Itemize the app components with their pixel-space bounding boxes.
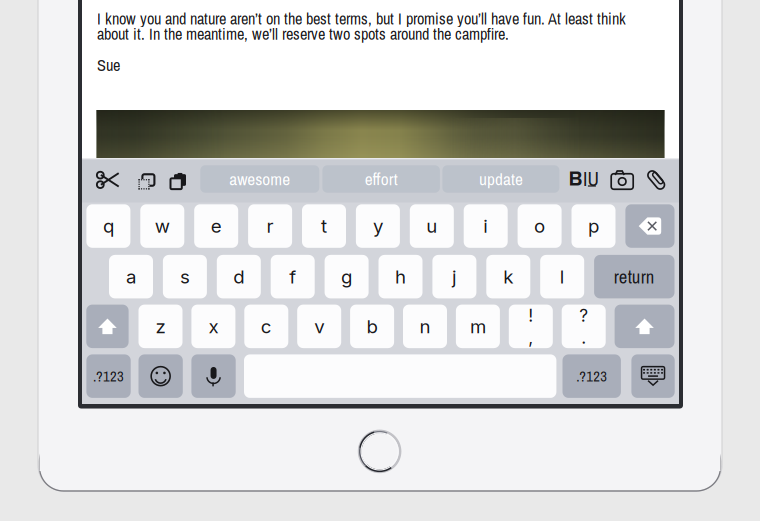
button[interactable]: j bbox=[432, 255, 476, 298]
button[interactable]: m bbox=[456, 305, 500, 348]
staticText: I bbox=[583, 166, 587, 192]
staticText: awesome bbox=[229, 167, 290, 191]
button[interactable]: x bbox=[191, 305, 235, 348]
staticText: y bbox=[373, 215, 383, 237]
staticText: s bbox=[180, 265, 190, 288]
staticText: p bbox=[588, 215, 599, 237]
staticText: t bbox=[321, 215, 327, 237]
staticText: about it. In the meantime, we’ll reserve… bbox=[97, 23, 509, 45]
staticText: i bbox=[483, 215, 488, 237]
button[interactable]: c bbox=[244, 305, 288, 348]
button[interactable]: Dictate bbox=[191, 354, 236, 398]
staticText: f bbox=[289, 265, 296, 288]
button[interactable]: p bbox=[571, 204, 615, 248]
staticText: n bbox=[419, 315, 430, 338]
staticText: ? bbox=[579, 305, 588, 326]
button[interactable]: Cut bbox=[92, 165, 124, 195]
staticText: a bbox=[126, 265, 136, 288]
button[interactable]: h bbox=[378, 255, 422, 298]
staticText: j bbox=[452, 265, 457, 288]
staticText: l bbox=[560, 265, 565, 288]
button[interactable]: o bbox=[518, 204, 562, 248]
staticText: e bbox=[211, 215, 222, 237]
button[interactable]: Shift bbox=[615, 305, 674, 348]
staticText: . bbox=[581, 327, 586, 348]
staticText: return bbox=[614, 264, 655, 289]
staticText: I know you and nature aren’t on the best… bbox=[97, 7, 626, 29]
button[interactable]: Paste bbox=[161, 165, 191, 195]
button[interactable]: Insert Photo bbox=[607, 166, 637, 194]
button[interactable]: Copy bbox=[129, 165, 159, 195]
button[interactable]: update bbox=[442, 165, 559, 193]
button[interactable]: Delete bbox=[625, 204, 674, 248]
button[interactable]: w bbox=[140, 204, 184, 248]
staticText: u bbox=[426, 215, 437, 237]
button[interactable]: r bbox=[248, 204, 292, 248]
button[interactable]: ! bbox=[509, 305, 553, 348]
button[interactable]: t bbox=[302, 204, 346, 248]
staticText: g bbox=[341, 265, 352, 288]
button[interactable]: d bbox=[217, 255, 261, 298]
staticText: B bbox=[568, 168, 582, 189]
staticText: m bbox=[470, 315, 486, 338]
button[interactable]: b bbox=[350, 305, 394, 348]
button[interactable]: a bbox=[109, 255, 153, 298]
staticText: x bbox=[208, 315, 218, 338]
staticText: r bbox=[267, 215, 274, 237]
button[interactable]: return bbox=[594, 255, 674, 298]
button[interactable]: .?123 bbox=[86, 354, 131, 398]
button[interactable]: k bbox=[486, 255, 530, 298]
staticText: , bbox=[528, 327, 533, 348]
button[interactable]: Hide Keyboard bbox=[631, 354, 675, 398]
button[interactable]: ? bbox=[562, 305, 606, 348]
staticText: c bbox=[261, 315, 272, 338]
staticText: w bbox=[155, 215, 170, 237]
button[interactable]: Space bbox=[244, 354, 556, 398]
button[interactable]: f bbox=[271, 255, 315, 298]
button[interactable]: q bbox=[86, 204, 130, 248]
button[interactable]: Bold Italic Underline bbox=[569, 165, 597, 193]
button[interactable]: Shift bbox=[86, 305, 129, 348]
staticText: ! bbox=[528, 305, 533, 326]
staticText: k bbox=[503, 265, 513, 288]
staticText: h bbox=[395, 265, 406, 288]
button[interactable]: Emoji bbox=[138, 354, 183, 398]
button[interactable]: s bbox=[163, 255, 207, 298]
staticText: update bbox=[479, 167, 523, 191]
button[interactable]: i bbox=[464, 204, 508, 248]
staticText: effort bbox=[365, 167, 398, 191]
button[interactable]: n bbox=[403, 305, 447, 348]
button[interactable]: Home bbox=[356, 427, 404, 475]
button[interactable]: y bbox=[356, 204, 400, 248]
staticText: .?123 bbox=[576, 366, 607, 386]
button[interactable]: .?123 bbox=[562, 354, 621, 398]
staticText: o bbox=[534, 215, 545, 237]
button[interactable]: effort bbox=[322, 165, 440, 193]
staticText: b bbox=[367, 315, 378, 338]
staticText: Sue bbox=[97, 54, 120, 76]
button[interactable]: v bbox=[297, 305, 341, 348]
staticText: q bbox=[103, 215, 114, 237]
button[interactable]: l bbox=[540, 255, 584, 298]
button[interactable]: u bbox=[410, 204, 454, 248]
button[interactable]: awesome bbox=[200, 165, 319, 193]
staticText: v bbox=[314, 315, 324, 338]
button[interactable]: z bbox=[138, 305, 182, 348]
staticText: U bbox=[587, 166, 598, 192]
staticText: .?123 bbox=[93, 366, 124, 386]
button[interactable]: e bbox=[194, 204, 238, 248]
staticText: d bbox=[233, 265, 244, 288]
button[interactable]: g bbox=[325, 255, 369, 298]
button[interactable]: Attach File bbox=[642, 166, 670, 194]
staticText: z bbox=[155, 315, 165, 338]
